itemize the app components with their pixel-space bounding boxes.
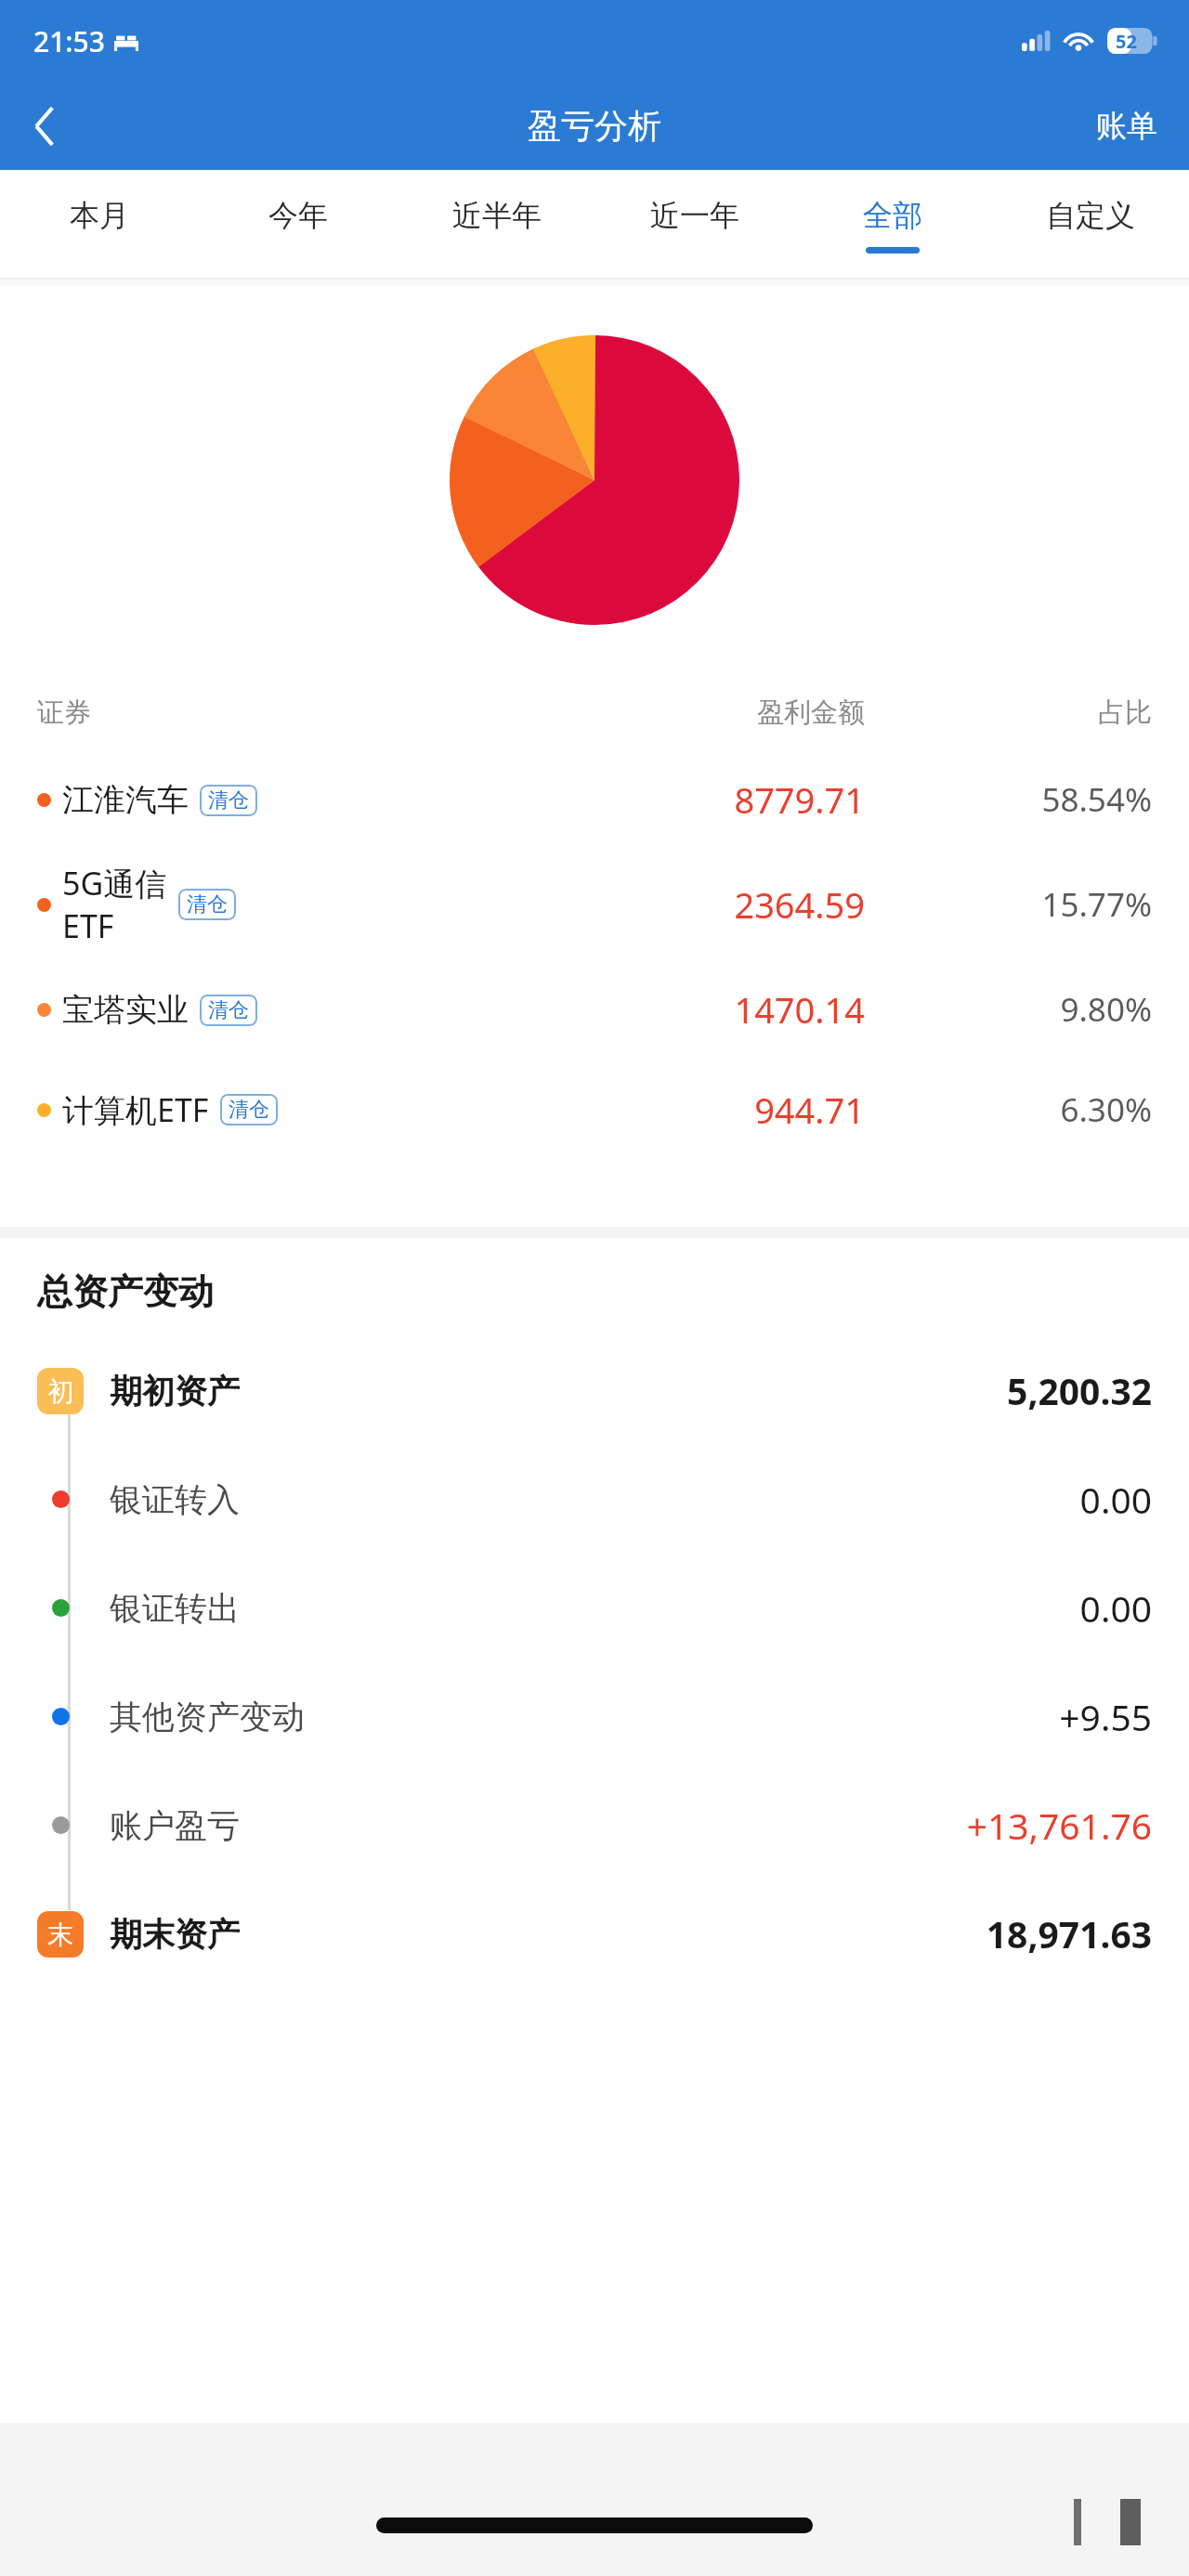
staticText: 账单 xyxy=(1096,107,1157,146)
staticText: 清仓 xyxy=(208,997,249,1023)
button[interactable]: 末 xyxy=(0,1880,1189,1988)
button[interactable]: 初 xyxy=(0,1336,1189,1445)
button[interactable]: 银证转入 xyxy=(0,1445,1189,1554)
staticText: 21:53 xyxy=(33,22,105,60)
staticText: 其他资产变动 xyxy=(110,1697,1059,1737)
staticText: 58.54% xyxy=(865,777,1152,822)
staticText: 1470.14 xyxy=(497,985,865,1034)
staticText: 盈亏分析 xyxy=(528,105,661,147)
button[interactable]: 银证转出 xyxy=(0,1554,1189,1662)
staticText: ETF xyxy=(62,904,114,947)
button[interactable]: 近半年 xyxy=(398,170,595,280)
staticText: 18,971.63 xyxy=(986,1909,1152,1958)
staticText: 计算机ETF xyxy=(62,1088,209,1131)
staticText: 清仓 xyxy=(208,787,249,813)
staticText: 盈利金额 xyxy=(497,696,865,730)
staticText: 0.00 xyxy=(1079,1475,1152,1524)
button[interactable]: 宝塔实业 xyxy=(0,959,1189,1060)
staticText: 本月 xyxy=(70,197,129,234)
staticText: 6.30% xyxy=(865,1087,1152,1132)
button[interactable]: 自定义 xyxy=(991,170,1189,280)
staticText: 总资产变动 xyxy=(37,1269,214,1314)
button[interactable]: 5G通信 xyxy=(0,850,1189,959)
button[interactable]: 计算机ETF xyxy=(0,1060,1189,1160)
staticText: 9.80% xyxy=(865,987,1152,1032)
staticText: +9.55 xyxy=(1059,1692,1152,1741)
staticText: +13,761.76 xyxy=(966,1801,1152,1850)
staticText: 银证转出 xyxy=(110,1588,1079,1629)
staticText: 0.00 xyxy=(1079,1583,1152,1633)
button[interactable]: 今年 xyxy=(199,170,398,280)
staticText: 银证转入 xyxy=(110,1479,1079,1520)
staticText: 全部 xyxy=(863,197,922,234)
staticText: 清仓 xyxy=(187,891,228,917)
staticText: 江淮汽车 xyxy=(62,780,189,820)
staticText: 期初资产 xyxy=(110,1371,1007,1412)
button[interactable]: 账户盈亏 xyxy=(0,1771,1189,1880)
staticText: 5G通信 xyxy=(62,862,167,904)
staticText: 证券 xyxy=(37,696,497,730)
staticText: 2364.59 xyxy=(497,880,865,929)
button[interactable]: 全部 xyxy=(793,170,991,280)
staticText: 期末资产 xyxy=(110,1914,986,1955)
staticText: 近一年 xyxy=(650,197,739,234)
staticText: 近半年 xyxy=(452,197,542,234)
staticText: 今年 xyxy=(268,197,328,234)
staticText: 账户盈亏 xyxy=(110,1805,966,1846)
staticText: 宝塔实业 xyxy=(62,990,189,1030)
button[interactable]: 近一年 xyxy=(595,170,793,280)
staticText: 清仓 xyxy=(229,1097,269,1123)
staticText: 52 xyxy=(1116,29,1137,54)
staticText: 末 xyxy=(47,1919,73,1951)
button[interactable]: Back xyxy=(0,82,89,170)
staticText: 初 xyxy=(47,1375,73,1408)
staticText: 15.77% xyxy=(865,882,1152,927)
button[interactable]: 江淮汽车 xyxy=(0,749,1189,850)
staticText: 占比 xyxy=(865,696,1152,730)
button[interactable]: 账单 xyxy=(1065,82,1189,170)
staticText: 944.71 xyxy=(497,1086,865,1134)
button[interactable]: 其他资产变动 xyxy=(0,1662,1189,1771)
button[interactable]: 本月 xyxy=(0,170,199,280)
staticText: 8779.71 xyxy=(497,775,865,824)
staticText: 自定义 xyxy=(1046,197,1135,234)
staticText: 5,200.32 xyxy=(1007,1366,1152,1415)
